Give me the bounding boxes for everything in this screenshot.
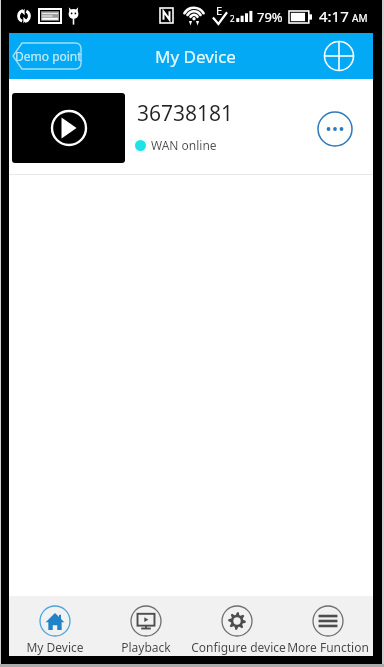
staticText: AM xyxy=(352,11,368,25)
staticText: Playback xyxy=(121,639,171,655)
staticText: 4:17 xyxy=(319,6,349,26)
staticText: My Device xyxy=(155,45,236,68)
staticText: 36738181 xyxy=(137,99,234,128)
staticText: 79% xyxy=(257,8,283,26)
button[interactable]: Configure device xyxy=(191,598,282,655)
button[interactable]: More Function xyxy=(282,598,373,655)
button[interactable]: My Device xyxy=(9,598,100,655)
staticText: WAN online xyxy=(151,137,217,153)
staticText: Configure device xyxy=(191,639,282,655)
button[interactable]: Playback xyxy=(100,598,191,655)
staticText: 2 xyxy=(230,13,235,24)
staticText: E xyxy=(216,3,223,18)
staticText: My Device xyxy=(26,639,84,655)
button[interactable]: 36738181 xyxy=(9,79,373,174)
button[interactable]: Demo point xyxy=(13,43,81,69)
staticText: Demo point xyxy=(15,48,82,64)
staticText: More Function xyxy=(287,639,369,655)
button[interactable]: More options xyxy=(317,111,353,147)
button[interactable]: Add device xyxy=(323,40,355,72)
